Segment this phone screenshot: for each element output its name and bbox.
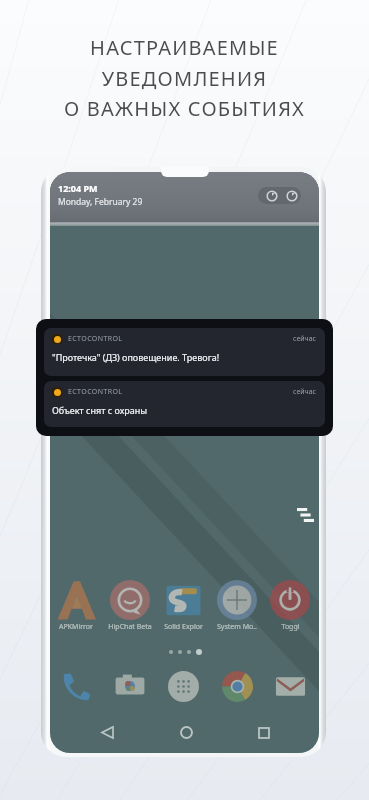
button[interactable]: Recents xyxy=(249,718,278,747)
button[interactable]: Toggl xyxy=(263,579,317,632)
staticText: Monday, February 29 xyxy=(58,196,143,208)
button[interactable]: Home xyxy=(172,718,201,747)
button[interactable]: Camera xyxy=(112,668,148,704)
button[interactable]: Quick setting xyxy=(286,190,298,202)
staticText: ECTOCONTROL xyxy=(68,387,123,397)
staticText: УВЕДОМЛЕНИЯ xyxy=(0,65,369,92)
button[interactable]: ECTOCONTROL xyxy=(44,328,325,376)
button[interactable]: APKMirror xyxy=(50,579,103,632)
staticText: APKMirror xyxy=(59,622,93,632)
staticText: сейчас xyxy=(293,334,317,344)
staticText: "Протечка" (ДЗ) оповещение. Тревога! xyxy=(52,351,220,363)
button[interactable]: ECTOCONTROL xyxy=(44,381,325,427)
button[interactable]: Quick setting xyxy=(266,190,278,202)
button[interactable]: Solid Explor xyxy=(156,579,210,632)
button[interactable]: Apps xyxy=(165,668,201,704)
staticText: НАСТРАИВАЕМЫЕ xyxy=(0,34,369,61)
button[interactable]: Phone xyxy=(58,668,94,704)
staticText: 12:04 PM xyxy=(58,182,98,194)
staticText: Объект снят с охраны xyxy=(52,404,148,416)
staticText: Toggl xyxy=(281,622,300,632)
button[interactable]: Chrome xyxy=(219,668,255,704)
staticText: System Mo.. xyxy=(217,622,257,632)
button[interactable]: Gmail xyxy=(272,668,308,704)
staticText: HipChat Beta xyxy=(108,622,152,632)
staticText: О ВАЖНЫХ СОБЫТИЯХ xyxy=(0,95,369,122)
button[interactable]: Back xyxy=(93,718,122,747)
button[interactable]: HipChat Beta xyxy=(103,579,157,632)
staticText: ECTOCONTROL xyxy=(68,334,123,344)
staticText: сейчас xyxy=(293,387,317,397)
staticText: Solid Explor xyxy=(164,622,203,632)
button[interactable]: System Mo.. xyxy=(210,579,264,632)
